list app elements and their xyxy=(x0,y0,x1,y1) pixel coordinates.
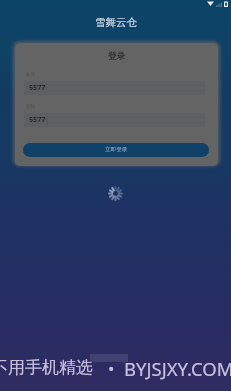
staticText: 立即登录 xyxy=(105,146,128,153)
staticText: BYJSJXY.COM xyxy=(124,356,231,381)
button[interactable]: 5577 xyxy=(24,81,205,95)
staticText: 登录 xyxy=(108,51,126,62)
button[interactable]: 5577 xyxy=(24,113,205,127)
staticText: 账号 xyxy=(26,72,36,78)
button[interactable]: 立即登录 xyxy=(23,143,209,157)
staticText: 雪舞云仓 xyxy=(95,16,137,29)
staticText: 不用手机精选 xyxy=(0,357,93,378)
staticText: 密码 xyxy=(26,104,36,110)
staticText: 5577 xyxy=(29,82,46,92)
staticText: 5577 xyxy=(29,114,46,124)
staticText: • xyxy=(108,357,115,380)
